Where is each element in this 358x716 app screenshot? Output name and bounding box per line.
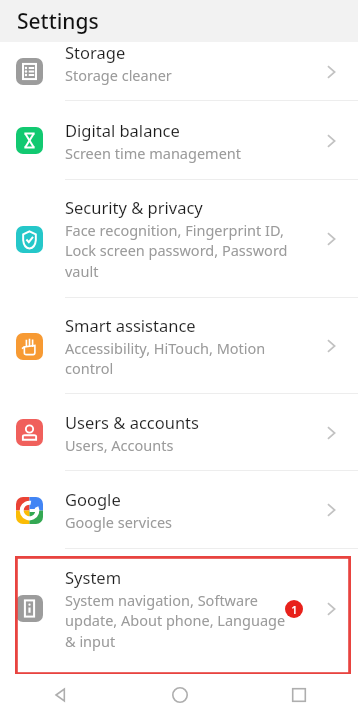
staticText: Smart assistance xyxy=(65,314,196,336)
button[interactable]: Smart assistance xyxy=(0,298,358,394)
button[interactable]: Digital balance xyxy=(0,101,358,180)
staticText: Accessibility, HiTouch, Motion control xyxy=(65,338,298,379)
button[interactable]: Back xyxy=(0,674,120,716)
staticText: Users, Accounts xyxy=(65,435,174,455)
staticText: Google services xyxy=(65,512,173,532)
button[interactable]: Users & accounts xyxy=(0,394,358,471)
staticText: Security & privacy xyxy=(65,196,203,218)
staticText: Storage cleaner xyxy=(65,65,172,85)
button[interactable]: Security & privacy xyxy=(0,180,358,298)
staticText: Users & accounts xyxy=(65,411,199,433)
button[interactable]: Storage xyxy=(0,42,358,101)
staticText: Storage xyxy=(65,41,126,63)
button[interactable]: Recent apps xyxy=(239,674,358,716)
staticText: System xyxy=(65,566,122,588)
button[interactable]: Google xyxy=(0,471,358,549)
button[interactable]: System xyxy=(0,549,358,668)
staticText: Face recognition, Fingerprint ID, Lock s… xyxy=(65,220,298,282)
staticText: Settings xyxy=(17,7,99,36)
staticText: System navigation, Software update, Abou… xyxy=(65,590,298,652)
staticText: Digital balance xyxy=(65,119,180,141)
staticText: Google xyxy=(65,488,121,510)
staticText: 1 xyxy=(291,602,298,617)
staticText: Screen time management xyxy=(65,143,241,163)
button[interactable]: Home xyxy=(120,674,239,716)
